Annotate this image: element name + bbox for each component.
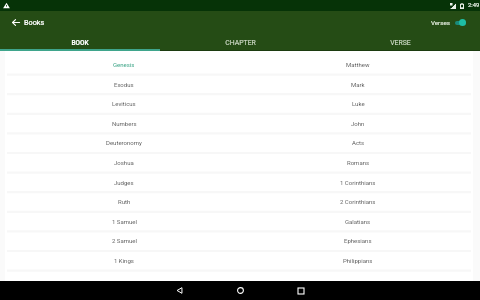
button[interactable]: Ruth <box>7 191 241 211</box>
button[interactable]: Numbers <box>7 113 241 133</box>
staticText: Luke <box>352 100 365 107</box>
button[interactable]: Exodus <box>7 74 241 94</box>
button[interactable]: Galatians <box>241 211 475 231</box>
button[interactable]: CHAPTER <box>160 34 320 51</box>
button[interactable]: 1 Corinthians <box>241 172 475 192</box>
staticText: Deuteronomy <box>106 139 142 146</box>
button[interactable]: VERSE <box>320 34 480 51</box>
button[interactable]: Joshua <box>7 152 241 172</box>
button[interactable]: Verses toggle <box>455 17 466 28</box>
button[interactable]: Romans <box>241 152 475 172</box>
staticText: Leviticus <box>112 100 136 107</box>
staticText: VERSE <box>390 39 411 47</box>
button[interactable]: Luke <box>241 93 475 113</box>
button[interactable]: 2 Corinthians <box>241 191 475 211</box>
staticText: John <box>351 120 365 127</box>
button[interactable]: Matthew <box>241 54 475 74</box>
staticText: 2 Samuel <box>112 237 137 244</box>
staticText: CHAPTER <box>225 39 256 47</box>
button[interactable]: Genesis <box>7 54 241 74</box>
staticText: BOOK <box>71 39 89 47</box>
button[interactable]: Philippians <box>241 250 475 270</box>
staticText: Ruth <box>118 198 131 205</box>
button[interactable]: 2 Samuel <box>7 230 241 250</box>
button[interactable]: 1 Kings <box>7 250 241 270</box>
staticText: Galatians <box>345 218 371 225</box>
button[interactable]: Leviticus <box>7 93 241 113</box>
staticText: Joshua <box>114 159 134 166</box>
staticText: Philippians <box>343 257 373 264</box>
staticText: 1 Kings <box>114 257 134 264</box>
button[interactable]: Mark <box>241 74 475 94</box>
staticText: 2 Corinthians <box>340 198 376 205</box>
button[interactable]: John <box>241 113 475 133</box>
button[interactable]: Acts <box>241 132 475 152</box>
button[interactable]: Judges <box>7 172 241 192</box>
staticText: Judges <box>114 179 134 186</box>
button[interactable]: Ephesians <box>241 230 475 250</box>
button[interactable]: Back <box>162 281 196 300</box>
button[interactable]: Deuteronomy <box>7 132 241 152</box>
button[interactable]: Recents <box>284 281 318 300</box>
staticText: 2:49 <box>468 2 480 9</box>
staticText: Mark <box>351 81 365 88</box>
staticText: Genesis <box>113 61 135 68</box>
button[interactable]: 1 Samuel <box>7 211 241 231</box>
button[interactable]: Home <box>223 281 257 300</box>
staticText: Ephesians <box>344 237 372 244</box>
staticText: Romans <box>347 159 370 166</box>
button[interactable]: BOOK <box>0 34 160 51</box>
staticText: Exodus <box>114 81 134 88</box>
staticText: Verses <box>431 19 450 26</box>
button[interactable]: Back <box>3 11 22 34</box>
staticText: Acts <box>352 139 365 146</box>
staticText: 1 Corinthians <box>340 179 376 186</box>
staticText: Numbers <box>112 120 137 127</box>
staticText: Books <box>24 18 45 27</box>
staticText: 1 Samuel <box>112 218 137 225</box>
staticText: Matthew <box>346 61 370 68</box>
